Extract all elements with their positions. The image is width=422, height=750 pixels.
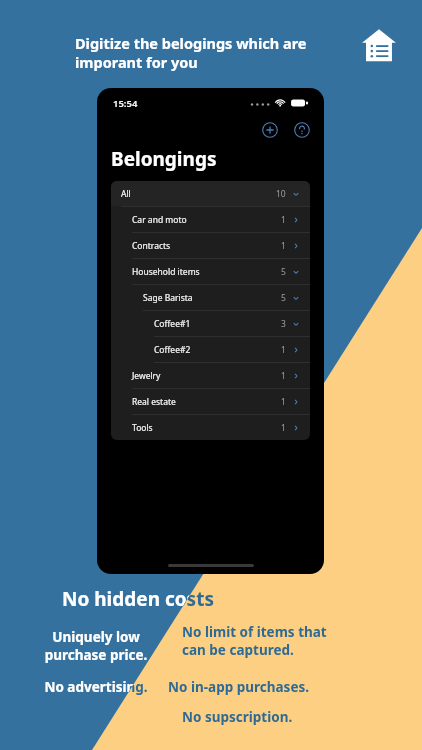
staticText: No in-app purchases. bbox=[168, 678, 353, 696]
staticText: Sage Barista bbox=[143, 292, 193, 304]
staticText: Tools bbox=[132, 422, 153, 434]
staticText: Jewelry bbox=[132, 370, 161, 382]
staticText: 5 bbox=[281, 266, 286, 278]
button[interactable]: Coffee#1 bbox=[111, 311, 310, 337]
staticText: Coffee#2 bbox=[154, 344, 191, 356]
staticText: No limit of items that can be captured. bbox=[182, 623, 367, 659]
staticText: Real estate bbox=[132, 396, 176, 408]
staticText: Uniquely low purchase price. bbox=[26, 628, 166, 664]
button[interactable]: App icon bbox=[361, 27, 397, 63]
staticText: No advertising. bbox=[26, 678, 166, 696]
button[interactable]: Tools bbox=[111, 415, 310, 440]
button[interactable]: Real estate bbox=[111, 389, 310, 415]
staticText: 1 bbox=[281, 344, 286, 356]
staticText: 5 bbox=[281, 292, 286, 304]
staticText: Belongings bbox=[111, 146, 217, 172]
button[interactable]: All bbox=[111, 181, 310, 207]
staticText: No advertising. bbox=[26, 678, 166, 696]
button[interactable]: Car and moto bbox=[111, 207, 310, 233]
staticText: 1 bbox=[281, 422, 286, 434]
staticText: 15:54 bbox=[113, 97, 138, 110]
button[interactable]: Household items bbox=[111, 259, 310, 285]
staticText: 3 bbox=[281, 318, 286, 330]
staticText: Contracts bbox=[132, 240, 171, 252]
staticText: 10 bbox=[276, 188, 286, 200]
button[interactable]: Coffee#2 bbox=[111, 337, 310, 363]
staticText: 1 bbox=[281, 370, 286, 382]
staticText: Household items bbox=[132, 266, 200, 278]
staticText: All bbox=[121, 188, 131, 200]
staticText: 1 bbox=[281, 240, 286, 252]
staticText: 1 bbox=[281, 396, 286, 408]
staticText: No hidden costs bbox=[62, 586, 362, 612]
button[interactable]: Help bbox=[294, 122, 310, 138]
staticText: Uniquely low purchase price. bbox=[26, 628, 166, 664]
button[interactable]: Add item bbox=[262, 122, 278, 138]
staticText: No supscription. bbox=[182, 708, 367, 726]
staticText: 1 bbox=[281, 214, 286, 226]
staticText: Digitize the belogings which are imporan… bbox=[75, 33, 335, 72]
button[interactable]: Jewelry bbox=[111, 363, 310, 389]
staticText: No supscription. bbox=[182, 708, 367, 726]
staticText: Car and moto bbox=[132, 214, 187, 226]
button[interactable]: Sage Barista bbox=[111, 285, 310, 311]
staticText: No hidden costs bbox=[62, 586, 362, 612]
staticText: No in-app purchases. bbox=[168, 678, 353, 696]
staticText: No limit of items that can be captured. bbox=[182, 623, 367, 659]
staticText: Coffee#1 bbox=[154, 318, 191, 330]
button[interactable]: Contracts bbox=[111, 233, 310, 259]
